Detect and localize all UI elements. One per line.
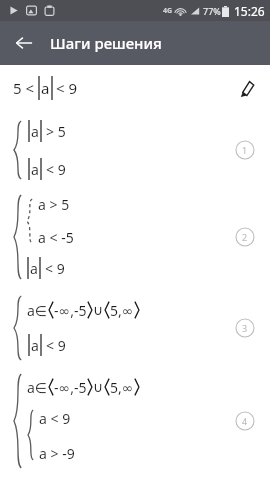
staticText: 5,∞ (110, 378, 134, 397)
button[interactable]: Back (4, 23, 44, 63)
staticText: a (30, 259, 38, 278)
staticText: Шаги решения (50, 33, 162, 53)
staticText: a > 5 (38, 195, 70, 214)
staticText: a∈ (27, 378, 48, 397)
button[interactable]: a∈ (0, 371, 270, 471)
staticText: < 9 (46, 160, 66, 179)
staticText: 77% (203, 5, 221, 17)
staticText: -∞,-5 (54, 301, 87, 320)
staticText: 4 (242, 415, 248, 427)
staticText: a > -9 (39, 444, 75, 463)
staticText: a (31, 122, 39, 141)
staticText: ∪ (93, 379, 104, 395)
staticText: ∪ (93, 302, 104, 318)
staticText: a (41, 78, 50, 98)
button[interactable]: 1 (235, 140, 255, 160)
staticText: < 9 (46, 336, 66, 355)
button[interactable]: 2 (235, 227, 255, 247)
staticText: 1 (242, 144, 248, 156)
staticText: a < 9 (39, 409, 71, 428)
staticText: 4G (163, 6, 173, 16)
staticText: a (31, 160, 39, 179)
staticText: a < -5 (38, 228, 74, 247)
staticText: a∈ (27, 301, 48, 320)
staticText: < 9 (56, 78, 78, 98)
staticText: 2 (242, 231, 248, 243)
button[interactable]: a∈ (0, 285, 270, 371)
button[interactable]: a > 5 (0, 189, 270, 285)
staticText: < 9 (45, 259, 65, 278)
staticText: 5,∞ (110, 301, 134, 320)
staticText: 5 < (13, 78, 35, 98)
staticText: > 5 (46, 122, 66, 141)
staticText: 3 (242, 322, 248, 334)
button[interactable]: Edit (229, 71, 263, 105)
staticText: a (31, 336, 39, 355)
staticText: 15:26 (234, 3, 265, 19)
staticText: -∞,-5 (54, 378, 87, 397)
button[interactable]: 4 (235, 411, 255, 431)
button[interactable]: 3 (235, 318, 255, 338)
button[interactable]: a (0, 111, 270, 189)
